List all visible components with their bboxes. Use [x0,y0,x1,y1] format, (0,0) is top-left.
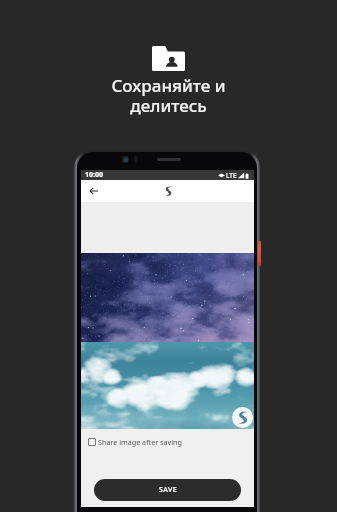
staticText: Сохраняйте и делитесь [111,74,226,117]
staticText: LTE [226,171,237,180]
button[interactable]: Share image after saving [81,434,254,450]
button[interactable]: SAVE [94,479,241,501]
staticText: Share image after saving [98,437,182,447]
staticText: 10:00 [85,170,103,180]
staticText: SAVE [159,485,177,495]
button[interactable]: Back [84,180,103,202]
